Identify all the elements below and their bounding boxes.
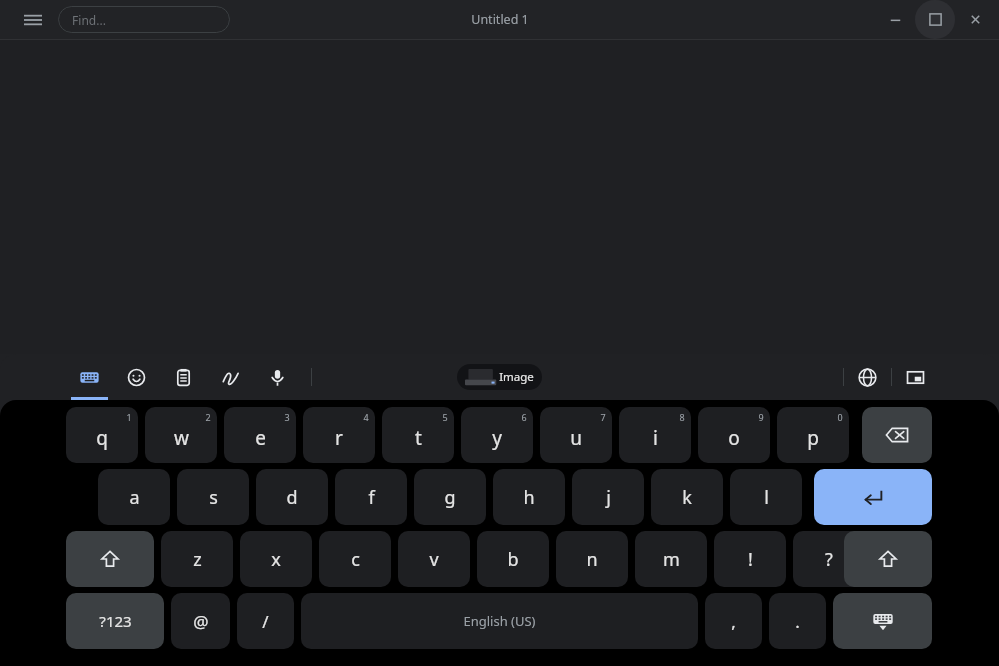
staticText: v (429, 547, 439, 572)
button[interactable]: l (730, 469, 802, 525)
button[interactable]: x (240, 531, 312, 587)
button[interactable]: m (635, 531, 707, 587)
staticText: ! (748, 547, 753, 572)
staticText: o (728, 425, 740, 451)
staticText: b (507, 547, 519, 572)
staticText: t (415, 425, 422, 451)
button[interactable]: t (382, 407, 454, 463)
button[interactable]: Handwriting (207, 354, 254, 400)
staticText: q (96, 425, 108, 451)
button[interactable]: . (769, 593, 826, 649)
staticText: p (807, 425, 819, 451)
staticText: 5 (442, 411, 448, 423)
button[interactable]: v (398, 531, 470, 587)
staticText: / (262, 610, 269, 633)
button[interactable]: d (256, 469, 328, 525)
button[interactable]: i (619, 407, 691, 463)
button[interactable]: Hide keyboard (833, 593, 932, 649)
button[interactable]: Find... (58, 6, 230, 33)
staticText: 1 (126, 411, 132, 423)
button[interactable]: p (777, 407, 849, 463)
staticText: n (586, 547, 598, 572)
staticText: d (286, 485, 298, 510)
staticText: r (335, 425, 343, 451)
staticText: @ (193, 610, 209, 633)
button[interactable]: n (556, 531, 628, 587)
button[interactable]: w (145, 407, 217, 463)
staticText: s (209, 485, 218, 510)
staticText: English (US) (463, 612, 536, 630)
staticText: m (663, 547, 680, 572)
button[interactable]: h (493, 469, 565, 525)
staticText: h (523, 485, 535, 510)
staticText: a (129, 485, 140, 510)
button[interactable]: z (161, 531, 233, 587)
button[interactable]: r (303, 407, 375, 463)
staticText: 0 (837, 411, 843, 423)
staticText: . (795, 610, 800, 633)
button[interactable]: Backspace (862, 407, 932, 463)
button[interactable]: g (414, 469, 486, 525)
button[interactable]: Emoji (113, 354, 160, 400)
button[interactable]: , (705, 593, 762, 649)
staticText: e (255, 425, 266, 451)
staticText: 3 (284, 411, 290, 423)
button[interactable]: j (572, 469, 644, 525)
button[interactable]: Change language (844, 354, 891, 400)
button[interactable]: Close (955, 0, 995, 39)
staticText: j (606, 485, 611, 510)
button[interactable]: Clipboard (160, 354, 207, 400)
staticText: l (764, 485, 769, 510)
button[interactable]: c (319, 531, 391, 587)
button[interactable]: Voice input (254, 354, 301, 400)
button[interactable]: Shift (844, 531, 932, 587)
staticText: , (731, 610, 736, 633)
staticText: 2 (205, 411, 211, 423)
button[interactable]: / (237, 593, 294, 649)
button[interactable]: q (66, 407, 138, 463)
staticText: i (653, 425, 658, 451)
button[interactable]: s (177, 469, 249, 525)
staticText: z (193, 547, 202, 572)
button[interactable]: Maximize (915, 0, 955, 39)
button[interactable]: Minimize (875, 0, 915, 39)
button[interactable]: y (461, 407, 533, 463)
staticText: ? (825, 547, 833, 572)
staticText: Untitled 1 (471, 11, 529, 28)
staticText: w (174, 425, 189, 451)
staticText: Image (499, 369, 534, 385)
button[interactable]: @ (171, 593, 230, 649)
staticText: ?123 (99, 611, 132, 631)
staticText: f (368, 485, 375, 510)
button[interactable]: ?123 (66, 593, 164, 649)
staticText: 8 (679, 411, 685, 423)
staticText: 7 (600, 411, 606, 423)
button[interactable]: Shift (66, 531, 154, 587)
staticText: c (351, 547, 360, 572)
button[interactable]: Image (465, 364, 534, 390)
button[interactable]: ! (714, 531, 786, 587)
button[interactable]: a (98, 469, 170, 525)
button[interactable]: Menu (18, 5, 48, 35)
button[interactable]: Keyboard (66, 354, 113, 400)
button[interactable]: English (US) (301, 593, 698, 649)
staticText: g (444, 485, 456, 510)
button[interactable]: e (224, 407, 296, 463)
staticText: 4 (363, 411, 369, 423)
button[interactable]: o (698, 407, 770, 463)
staticText: 9 (758, 411, 764, 423)
button[interactable]: u (540, 407, 612, 463)
staticText: k (682, 485, 692, 510)
button[interactable]: Floating keyboard (892, 354, 939, 400)
staticText: x (271, 547, 281, 572)
button[interactable]: b (477, 531, 549, 587)
button[interactable]: ? (793, 531, 865, 587)
staticText: u (570, 425, 582, 451)
staticText: y (492, 425, 502, 451)
staticText: 6 (521, 411, 527, 423)
button[interactable]: k (651, 469, 723, 525)
button[interactable]: Enter (814, 469, 932, 525)
staticText: Find... (72, 12, 106, 28)
button[interactable]: f (335, 469, 407, 525)
